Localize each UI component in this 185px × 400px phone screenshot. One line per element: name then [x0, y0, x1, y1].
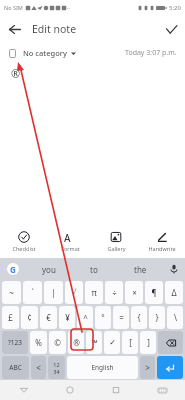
staticText: € — [46, 312, 51, 323]
button[interactable]: Gallery — [93, 224, 139, 258]
button[interactable]: Save note — [157, 15, 185, 43]
button[interactable]: π — [85, 281, 103, 304]
button[interactable]: Aa — [47, 224, 93, 258]
button[interactable]: | — [44, 281, 63, 304]
button[interactable]: ABC — [2, 356, 29, 379]
button[interactable]: the — [117, 258, 163, 280]
staticText: π — [91, 287, 97, 298]
staticText: ] — [147, 337, 150, 348]
button[interactable]: 12 34 — [48, 356, 65, 379]
button[interactable]: Back — [0, 15, 28, 43]
button[interactable]: © — [49, 331, 66, 354]
staticText: G — [10, 264, 16, 275]
staticText: ¥ — [65, 312, 70, 323]
staticText: ~ — [9, 287, 14, 298]
staticText: \ — [174, 312, 177, 323]
button[interactable]: ÷ — [105, 281, 123, 304]
button[interactable]: ` — [23, 281, 42, 304]
staticText: | — [51, 287, 56, 298]
staticText: % — [35, 337, 42, 348]
button[interactable]: ™ — [86, 331, 102, 354]
staticText: No SIM — [4, 4, 23, 11]
button[interactable]: Δ — [165, 281, 183, 304]
staticText: ™ — [91, 337, 98, 348]
staticText: = — [119, 312, 124, 323]
button[interactable]: Hide keyboard — [139, 380, 185, 400]
button[interactable]: × — [125, 281, 143, 304]
staticText: ✓ — [109, 338, 116, 347]
staticText: × — [132, 287, 137, 298]
button[interactable]: £ — [2, 306, 19, 329]
staticText: No category — [23, 48, 67, 58]
button[interactable]: Voice input — [163, 258, 185, 280]
staticText: ·· — [67, 4, 70, 11]
button[interactable]: > — [140, 356, 155, 379]
staticText: Checklist — [12, 245, 36, 252]
staticText: ABC — [9, 363, 22, 372]
button[interactable]: ® — [68, 331, 84, 354]
staticText: ¢ — [27, 312, 32, 323]
staticText: £ — [8, 312, 13, 323]
staticText: English — [91, 363, 114, 372]
button[interactable]: ✓ — [104, 331, 120, 354]
button[interactable]: ~ — [2, 281, 21, 304]
button[interactable]: Enter — [157, 356, 183, 379]
staticText: ® — [73, 337, 80, 348]
button[interactable]: Recent apps — [93, 380, 139, 400]
staticText: [ — [129, 337, 132, 348]
button[interactable]: Backspace — [158, 331, 183, 354]
staticText: Format — [61, 245, 80, 252]
button[interactable]: Back — [0, 380, 47, 400]
button[interactable]: \ — [167, 306, 183, 329]
staticText: Aa — [64, 231, 76, 243]
button[interactable]: ^ — [77, 306, 93, 329]
staticText: Edit note — [32, 22, 77, 36]
staticText: ¶ — [151, 287, 157, 298]
button[interactable]: ¶ — [145, 281, 163, 304]
staticText: © — [54, 337, 61, 348]
staticText: { — [137, 312, 141, 323]
staticText: ® — [11, 66, 21, 81]
staticText: Today 3:07 p.m. — [125, 48, 177, 58]
staticText: the — [134, 264, 147, 275]
button[interactable]: ¥ — [59, 306, 75, 329]
staticText: Gallery — [107, 245, 126, 252]
staticText: √ — [71, 288, 77, 297]
button[interactable]: ?123 — [2, 331, 28, 354]
button[interactable]: English — [67, 356, 138, 379]
staticText: Δ — [171, 287, 177, 298]
staticText: 5:20 — [169, 4, 181, 12]
button[interactable]: < — [31, 356, 46, 379]
staticText: Handwrite — [148, 245, 176, 252]
staticText: } — [155, 312, 159, 323]
button[interactable]: Home — [47, 380, 93, 400]
staticText: to — [90, 264, 98, 275]
button[interactable]: √ — [65, 281, 83, 304]
button[interactable]: ¢ — [21, 306, 38, 329]
staticText: ^ — [83, 312, 88, 323]
staticText: ° — [101, 312, 105, 323]
staticText: you — [42, 264, 56, 275]
staticText: ` — [31, 287, 34, 298]
button[interactable]: € — [40, 306, 57, 329]
button[interactable]: Checklist — [0, 224, 47, 258]
staticText: < — [36, 362, 41, 373]
staticText: ?123 — [8, 338, 22, 347]
button[interactable]: ° — [95, 306, 111, 329]
staticText: ÷ — [112, 287, 117, 298]
button[interactable]: you — [26, 258, 71, 280]
staticText: 12 34 — [53, 361, 60, 375]
button[interactable]: = — [113, 306, 129, 329]
button[interactable]: % — [30, 331, 47, 354]
button[interactable]: Handwrite — [139, 224, 185, 258]
staticText: > — [145, 362, 150, 373]
button[interactable]: [ — [122, 331, 138, 354]
button[interactable]: } — [149, 306, 165, 329]
button[interactable]: ] — [140, 331, 156, 354]
button[interactable]: { — [131, 306, 147, 329]
button[interactable]: No category — [8, 48, 76, 58]
button[interactable]: to — [71, 258, 117, 280]
button[interactable]: Google — [0, 258, 26, 280]
